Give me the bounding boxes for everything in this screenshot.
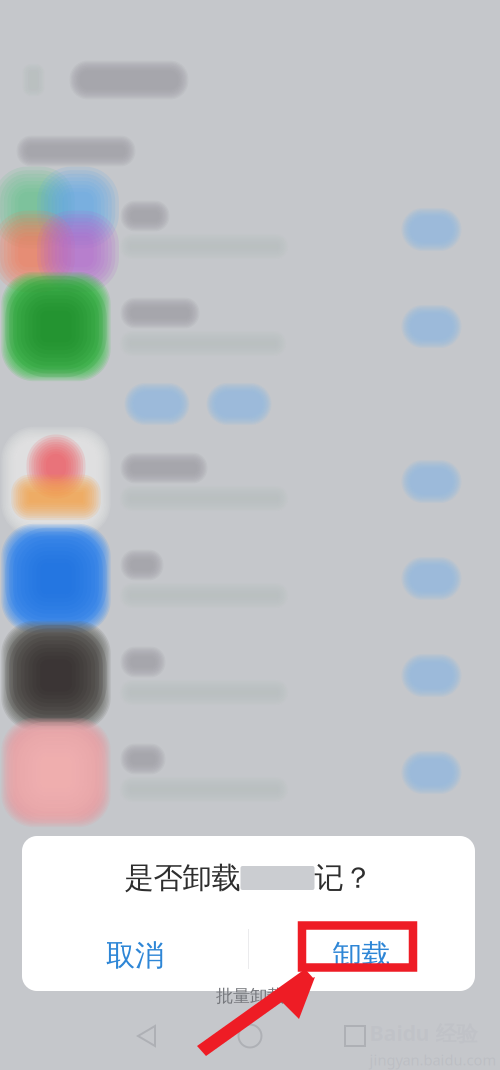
button[interactable]: Home — [235, 1021, 265, 1051]
staticText: 卸载 — [332, 937, 390, 973]
button[interactable] — [0, 278, 500, 375]
button[interactable]: 批量卸载 — [0, 987, 500, 1005]
button[interactable] — [0, 627, 500, 724]
button[interactable] — [0, 724, 500, 821]
button[interactable]: Back — [133, 1021, 163, 1051]
button[interactable] — [0, 530, 500, 627]
button[interactable] — [0, 433, 500, 530]
staticText: 取消 — [106, 937, 164, 973]
staticText: 记？ — [314, 860, 372, 896]
button[interactable] — [0, 181, 500, 278]
button[interactable]: 卸载 — [248, 920, 475, 991]
staticText: 是否卸载 — [124, 860, 240, 896]
button[interactable]: 取消 — [22, 920, 248, 991]
button[interactable]: Recents — [340, 1021, 370, 1051]
staticText: 批量卸载 — [216, 985, 284, 1007]
